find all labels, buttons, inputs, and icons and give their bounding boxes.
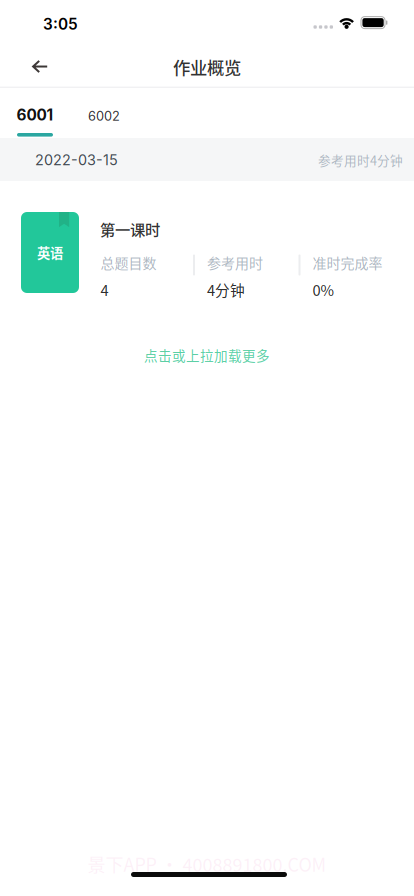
staticText: 6001 [16, 106, 53, 124]
staticText: 点击或上拉加载更多 [144, 345, 270, 365]
staticText: 2022-03-15 [35, 151, 118, 169]
staticText: 参考用时4分钟 [318, 151, 403, 169]
staticText: 6002 [88, 108, 120, 124]
button[interactable]: 6001 [0, 88, 70, 138]
staticText: 准时完成率 [312, 252, 382, 273]
staticText: 3:05 [43, 15, 78, 33]
staticText: 4分钟 [207, 279, 245, 300]
staticText: 4 [100, 279, 108, 300]
staticText: 第一课时 [100, 218, 160, 240]
staticText: 英语 [37, 243, 63, 262]
staticText: 作业概览 [173, 54, 241, 80]
button[interactable]: 英语 [0, 181, 414, 293]
button[interactable]: Back [0, 45, 68, 88]
button[interactable]: 点击或上拉加载更多 [0, 293, 414, 380]
staticText: 0% [312, 279, 334, 300]
button[interactable]: 6002 [70, 88, 138, 138]
staticText: 总题目数 [100, 252, 156, 273]
staticText: 景下APP · 4008891800.COM [87, 851, 326, 877]
staticText: 参考用时 [207, 252, 263, 273]
